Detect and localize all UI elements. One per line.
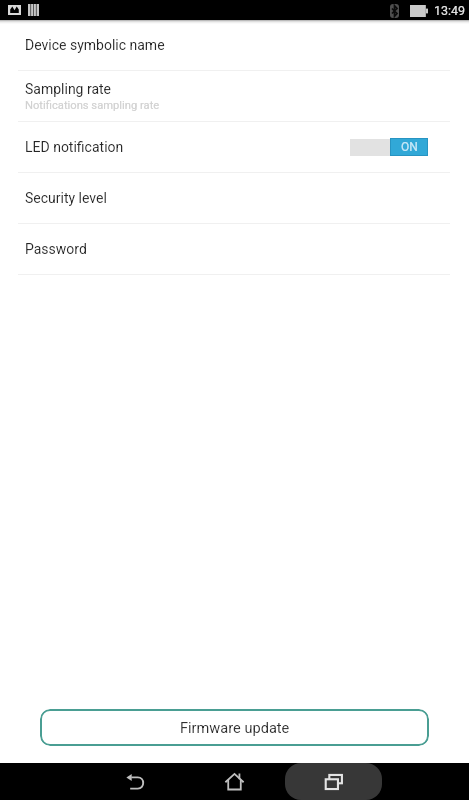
staticText: LED notification (25, 139, 124, 155)
button[interactable]: LED notification (0, 122, 469, 173)
button[interactable]: Security level (0, 173, 469, 224)
staticText: Password (25, 241, 87, 257)
staticText: Security level (25, 190, 107, 206)
staticText: Sampling rate (25, 81, 112, 97)
button[interactable]: Firmware update (40, 709, 429, 746)
button[interactable]: Device symbolic name (0, 20, 469, 71)
button[interactable]: Home (198, 763, 271, 800)
button[interactable]: Sampling rate (0, 71, 469, 122)
staticText: Notifications sampling rate (25, 99, 160, 112)
button[interactable]: Back (99, 763, 171, 800)
staticText: 13:49 (434, 3, 466, 18)
staticText: Device symbolic name (25, 37, 165, 53)
button[interactable]: Password (0, 224, 469, 275)
button[interactable]: Recent apps (285, 763, 382, 800)
staticText: ON (401, 140, 418, 154)
staticText: Firmware update (180, 719, 290, 736)
button[interactable]: LED notification toggle (350, 138, 428, 156)
